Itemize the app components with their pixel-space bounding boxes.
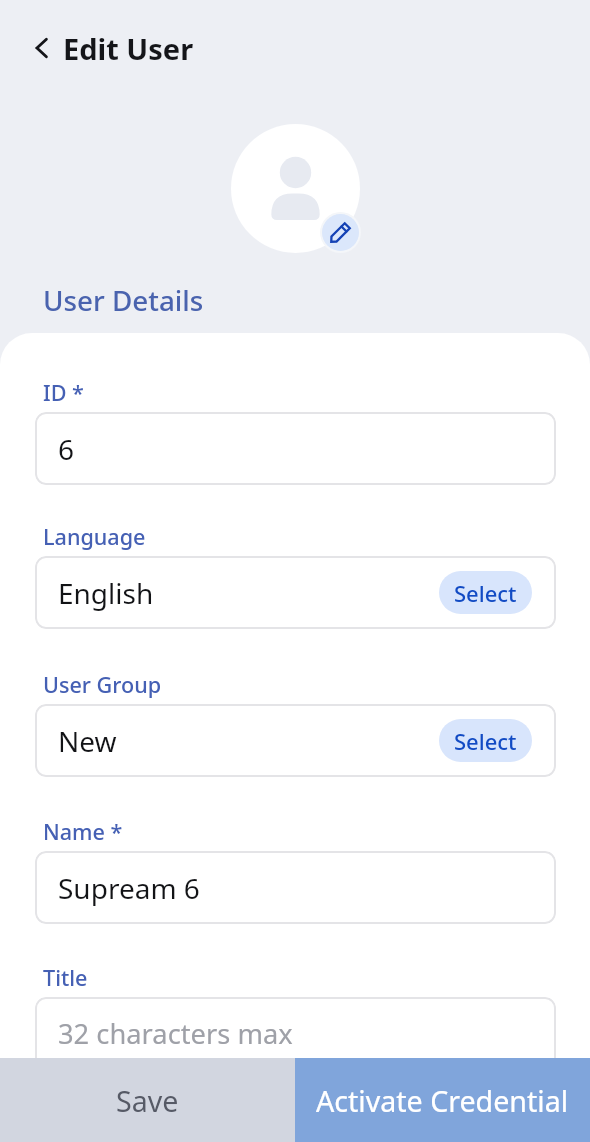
- button[interactable]: Select: [439, 571, 532, 614]
- staticText: User Details: [43, 281, 204, 319]
- button[interactable]: Save: [0, 1058, 295, 1142]
- staticText: Name *: [43, 817, 123, 846]
- button[interactable]: Edit photo: [322, 214, 359, 251]
- staticText: ID *: [43, 378, 84, 407]
- staticText: English: [58, 574, 154, 612]
- button[interactable]: Activate Credential: [295, 1058, 590, 1142]
- button[interactable]: 32 characters max: [35, 997, 556, 1070]
- button[interactable]: New: [35, 704, 556, 777]
- button[interactable]: 6: [35, 412, 556, 485]
- staticText: Edit User: [63, 29, 194, 68]
- button[interactable]: Select: [439, 719, 532, 762]
- staticText: Title: [43, 963, 88, 992]
- staticText: User Group: [43, 670, 162, 699]
- staticText: 32 characters max: [58, 1015, 293, 1052]
- staticText: Supream 6: [58, 869, 200, 907]
- staticText: 6: [58, 430, 75, 468]
- button[interactable]: Supream 6: [35, 851, 556, 924]
- button[interactable]: English: [35, 556, 556, 629]
- staticText: New: [58, 722, 117, 760]
- staticText: Save: [116, 1081, 179, 1120]
- staticText: Select: [454, 578, 517, 608]
- staticText: Activate Credential: [316, 1081, 569, 1120]
- button[interactable]: Back: [25, 31, 59, 65]
- staticText: Language: [43, 522, 146, 551]
- staticText: Select: [454, 726, 517, 756]
